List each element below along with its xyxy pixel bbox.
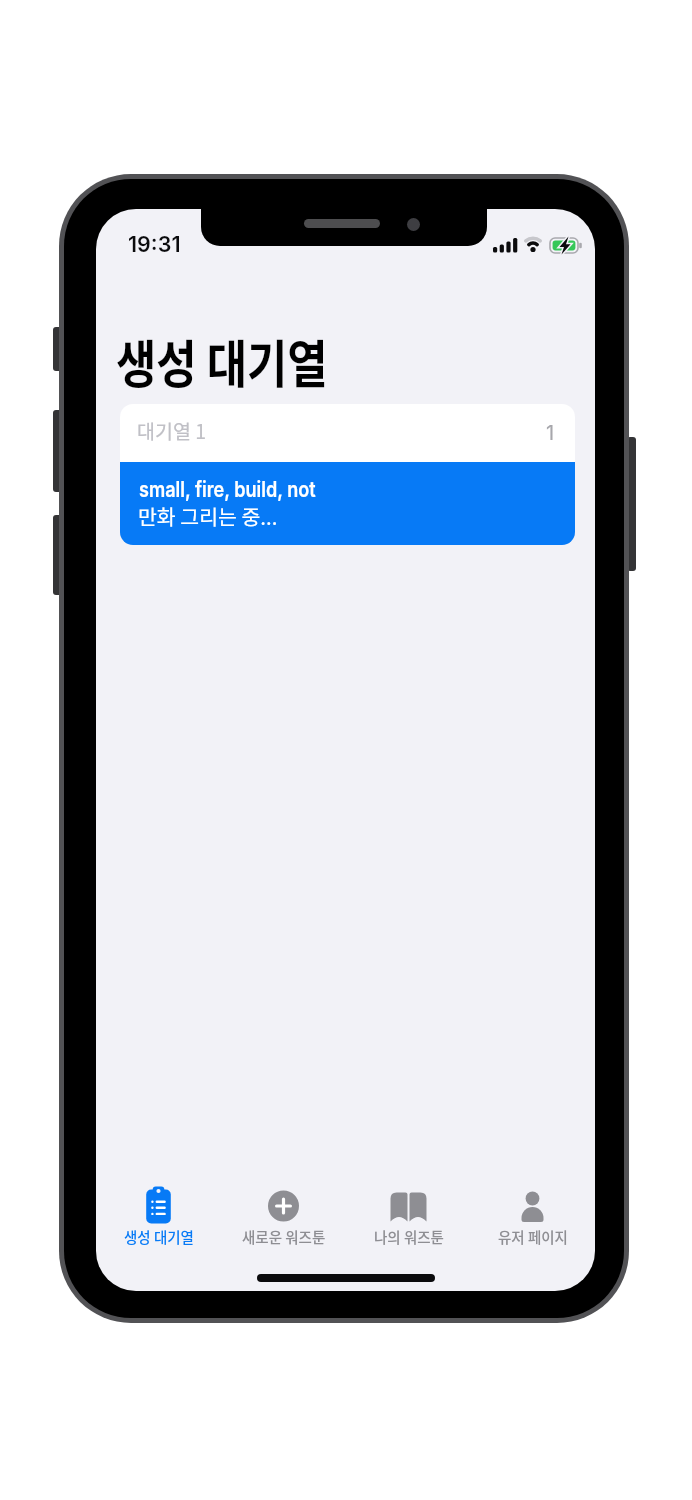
button[interactable]: 생성 대기열 [96,1181,221,1245]
staticText: 만화 그리는 중... [138,501,278,531]
staticText: 새로운 워즈툰 [242,1226,326,1247]
button[interactable]: 유저 페이지 [470,1181,595,1245]
button[interactable] [120,404,575,462]
button[interactable]: 나의 워즈툰 [346,1181,471,1245]
staticText: 생성 대기열 [116,324,328,398]
button[interactable]: 새로운 워즈툰 [221,1181,346,1245]
staticText: small, fire, build, not [139,476,316,502]
button[interactable] [120,462,575,545]
staticText: 1 [546,421,555,445]
staticText: 유저 페이지 [498,1226,568,1247]
staticText: 대기열 1 [137,416,207,444]
staticText: 생성 대기열 [124,1226,194,1247]
staticText: 19:31 [128,231,181,257]
staticText: 나의 워즈툰 [374,1226,444,1247]
